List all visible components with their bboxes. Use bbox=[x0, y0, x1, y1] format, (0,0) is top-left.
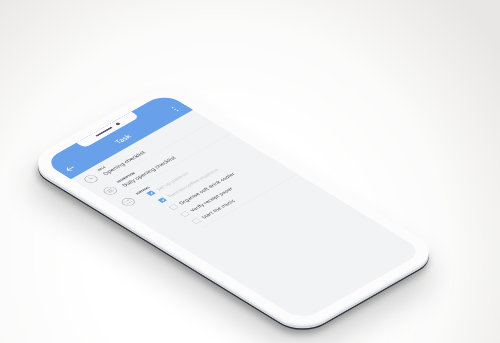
staticText: Verify receipt paper bbox=[188, 186, 235, 212]
button[interactable]: Organise soft drink cooler bbox=[165, 151, 272, 212]
staticText: Start the music bbox=[199, 198, 236, 219]
button[interactable]: Start the music bbox=[188, 165, 294, 226]
button[interactable]: Verify receipt paper bbox=[177, 158, 283, 219]
staticText: TITLE bbox=[96, 166, 107, 172]
staticText: Task bbox=[112, 133, 134, 145]
staticText: Organise soft drink cooler bbox=[177, 171, 237, 205]
staticText: Daily opening checklist bbox=[120, 155, 178, 188]
staticText: Opening checklist bbox=[101, 149, 147, 176]
staticText: Turn on coffee machine bbox=[165, 167, 220, 198]
staticText: Set up pastries bbox=[154, 170, 191, 192]
button[interactable]: Turn on coffee machine bbox=[154, 144, 260, 205]
staticText: SUBTASKS bbox=[135, 186, 151, 195]
staticText: DESCRIPTION bbox=[116, 171, 137, 184]
button[interactable]: Set up pastries bbox=[143, 137, 249, 198]
button[interactable]: More options bbox=[158, 99, 192, 119]
button[interactable]: Back bbox=[53, 158, 88, 179]
